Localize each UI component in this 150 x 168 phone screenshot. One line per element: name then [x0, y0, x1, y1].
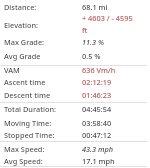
button[interactable] [0, 155, 150, 166]
button[interactable] [0, 15, 150, 35]
staticText: Distance: [4, 2, 37, 12]
staticText: 03:58:40 [82, 118, 112, 128]
staticText: 11.3 % [82, 37, 104, 47]
staticText: Ascent time [4, 77, 46, 87]
staticText: Moving Time: [4, 118, 52, 128]
staticText: Max Grade: [4, 37, 45, 47]
staticText: Max Speed: [4, 144, 45, 154]
staticText: Avg Speed: [4, 156, 43, 166]
button[interactable] [0, 0, 150, 15]
staticText: Stopped Time: [4, 130, 55, 140]
staticText: Avg Grade [4, 51, 41, 61]
staticText: VAM [4, 65, 20, 75]
button[interactable] [0, 116, 150, 130]
button[interactable] [0, 49, 150, 64]
button[interactable] [0, 89, 150, 102]
button[interactable] [0, 130, 150, 142]
button[interactable] [0, 142, 150, 155]
staticText: 04:45:54 [82, 104, 112, 114]
staticText: Elevation: [4, 20, 39, 30]
staticText: ft [82, 25, 88, 35]
staticText: Descent time [4, 90, 51, 100]
staticText: 0.5 % [82, 51, 101, 61]
button[interactable] [0, 103, 150, 117]
staticText: 00:47:12 [82, 130, 112, 140]
staticText: 68.1 mi [82, 2, 108, 12]
staticText: + 4603 / - 4595 [82, 13, 133, 23]
button[interactable] [0, 77, 150, 89]
staticText: 43.3 mph [82, 144, 114, 154]
staticText: 02:12:19 [82, 77, 112, 87]
button[interactable] [0, 35, 150, 49]
staticText: 01:46:23 [82, 90, 112, 100]
staticText: 17.1 mph [82, 156, 115, 166]
staticText: Total Duration: [4, 104, 57, 114]
staticText: 636 Vm/h [82, 65, 116, 75]
button[interactable] [0, 66, 150, 78]
